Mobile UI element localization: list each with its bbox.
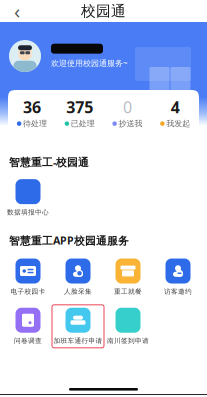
button[interactable]: 人脸采集	[54, 258, 102, 296]
button[interactable]: 375	[56, 92, 104, 133]
staticText: 4	[171, 96, 180, 118]
staticText: 待处理	[23, 119, 47, 128]
button[interactable]: Back	[6, 0, 28, 22]
button[interactable]: 0	[103, 92, 151, 133]
staticText: 智慧重工APP校园通服务	[9, 233, 129, 248]
staticText: 加班车通行申请	[53, 337, 102, 345]
staticText: 重工就餐	[114, 287, 142, 296]
button[interactable]: 电子校园卡	[4, 258, 52, 296]
staticText: 我发起	[166, 119, 190, 128]
button[interactable]: 4	[151, 92, 199, 133]
staticText: 375	[66, 96, 93, 118]
staticText: 校园通	[81, 2, 126, 20]
staticText: 人脸采集	[64, 287, 92, 296]
staticText: 访客邀约	[164, 287, 192, 296]
button[interactable]: 数据填报中心	[4, 179, 52, 216]
button[interactable]: 访客邀约	[154, 258, 202, 296]
staticText: 抄送我	[118, 119, 142, 128]
staticText: 数据填报中心	[7, 208, 49, 216]
button[interactable]: 问卷调查	[4, 308, 52, 345]
staticText: 电子校园卡	[10, 287, 45, 296]
button[interactable]: 重工就餐	[104, 258, 152, 296]
button[interactable]: 南川签到申请	[104, 308, 152, 345]
staticText: 欢迎使用校园通服务~	[51, 58, 128, 68]
staticText: 南川签到申请	[107, 337, 149, 345]
staticText: 0	[123, 96, 132, 118]
button[interactable]: 加班车通行申请	[54, 308, 102, 345]
staticText: 36	[23, 96, 41, 118]
staticText: 智慧重工-校园通	[9, 155, 89, 169]
button[interactable]: 36	[8, 92, 56, 133]
staticText: 问卷调查	[14, 337, 42, 345]
staticText: ‹	[14, 0, 20, 24]
staticText: 已处理	[71, 119, 95, 128]
